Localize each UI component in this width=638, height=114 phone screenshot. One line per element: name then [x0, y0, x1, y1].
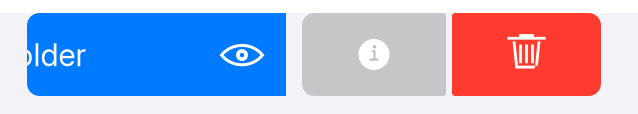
button[interactable]: More info — [302, 13, 446, 96]
staticText: Folder — [0, 36, 86, 73]
button[interactable]: Delete — [452, 13, 601, 96]
button[interactable]: Folder — [27, 13, 286, 96]
